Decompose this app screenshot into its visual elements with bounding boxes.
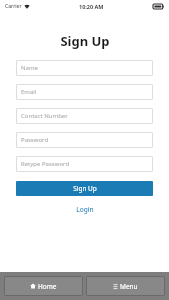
button[interactable]: Password <box>16 132 153 148</box>
staticText: Email <box>21 88 37 96</box>
staticText: Name <box>21 64 38 72</box>
staticText: Carrier <box>5 3 22 10</box>
staticText: 10:20 AM <box>79 3 104 10</box>
staticText: Contact Number <box>21 112 68 120</box>
staticText: Menu <box>120 282 138 291</box>
staticText: Sign Up <box>73 184 97 193</box>
button[interactable]: Retype Password <box>16 156 153 172</box>
button[interactable]: Contact Number <box>16 108 153 124</box>
button[interactable]: Sign Up <box>16 181 153 196</box>
staticText: Home <box>38 282 57 291</box>
button[interactable]: Login <box>70 204 100 215</box>
staticText: Sign Up <box>60 32 110 50</box>
button[interactable]: Menu <box>86 276 165 296</box>
button[interactable]: Name <box>16 60 153 76</box>
staticText: Login <box>76 205 94 214</box>
button[interactable]: Email <box>16 84 153 100</box>
button[interactable]: Home <box>4 276 83 296</box>
staticText: Retype Password <box>21 160 70 168</box>
staticText: Password <box>21 136 49 144</box>
